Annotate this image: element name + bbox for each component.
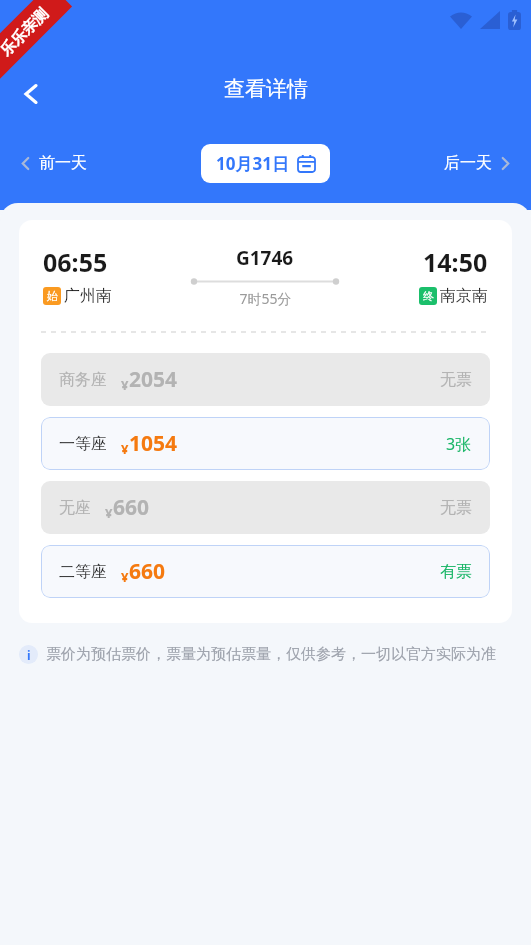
button[interactable]: 二等座	[41, 545, 490, 598]
staticText: 有票	[440, 562, 472, 582]
staticText: 前一天	[39, 153, 87, 173]
button[interactable]: Back	[8, 70, 56, 118]
button[interactable]: 10月31日	[201, 144, 330, 183]
staticText: 南京南	[440, 286, 488, 306]
button[interactable]: 后一天	[438, 147, 517, 179]
button[interactable]: 无座	[41, 481, 490, 534]
staticText: 06:55	[43, 245, 108, 279]
staticText: G1746	[236, 245, 294, 271]
button[interactable]: 商务座	[41, 353, 490, 406]
staticText: 无票	[440, 498, 472, 518]
staticText: 始	[47, 289, 58, 303]
staticText: 一等座	[59, 434, 107, 454]
staticText: 1054	[129, 429, 178, 458]
staticText: ¥	[105, 504, 113, 522]
staticText: 无座	[59, 498, 91, 518]
staticText: 票价为预估票价，票量为预估票量，仅供参考，一切以官方实际为准	[46, 645, 496, 664]
staticText: 后一天	[444, 153, 492, 173]
staticText: 660	[129, 557, 166, 586]
staticText: 2054	[129, 365, 178, 394]
staticText: 终	[423, 289, 434, 303]
staticText: 广州南	[64, 286, 112, 306]
staticText: ¥	[121, 376, 129, 394]
staticText: 商务座	[59, 370, 107, 390]
button[interactable]: 前一天	[14, 147, 93, 179]
button[interactable]: 一等座	[41, 417, 490, 470]
staticText: i	[27, 647, 31, 663]
staticText: 660	[113, 493, 150, 522]
staticText: 查看详情	[224, 76, 308, 102]
staticText: 7时55分	[239, 289, 292, 308]
staticText: 3张	[446, 433, 472, 455]
staticText: ¥	[121, 440, 129, 458]
staticText: 二等座	[59, 562, 107, 582]
staticText: 10月31日	[216, 152, 289, 175]
staticText: 14:50	[423, 245, 488, 279]
staticText: 无票	[440, 370, 472, 390]
staticText: ¥	[121, 568, 129, 586]
staticText: 乐乐亲测	[0, 4, 52, 60]
